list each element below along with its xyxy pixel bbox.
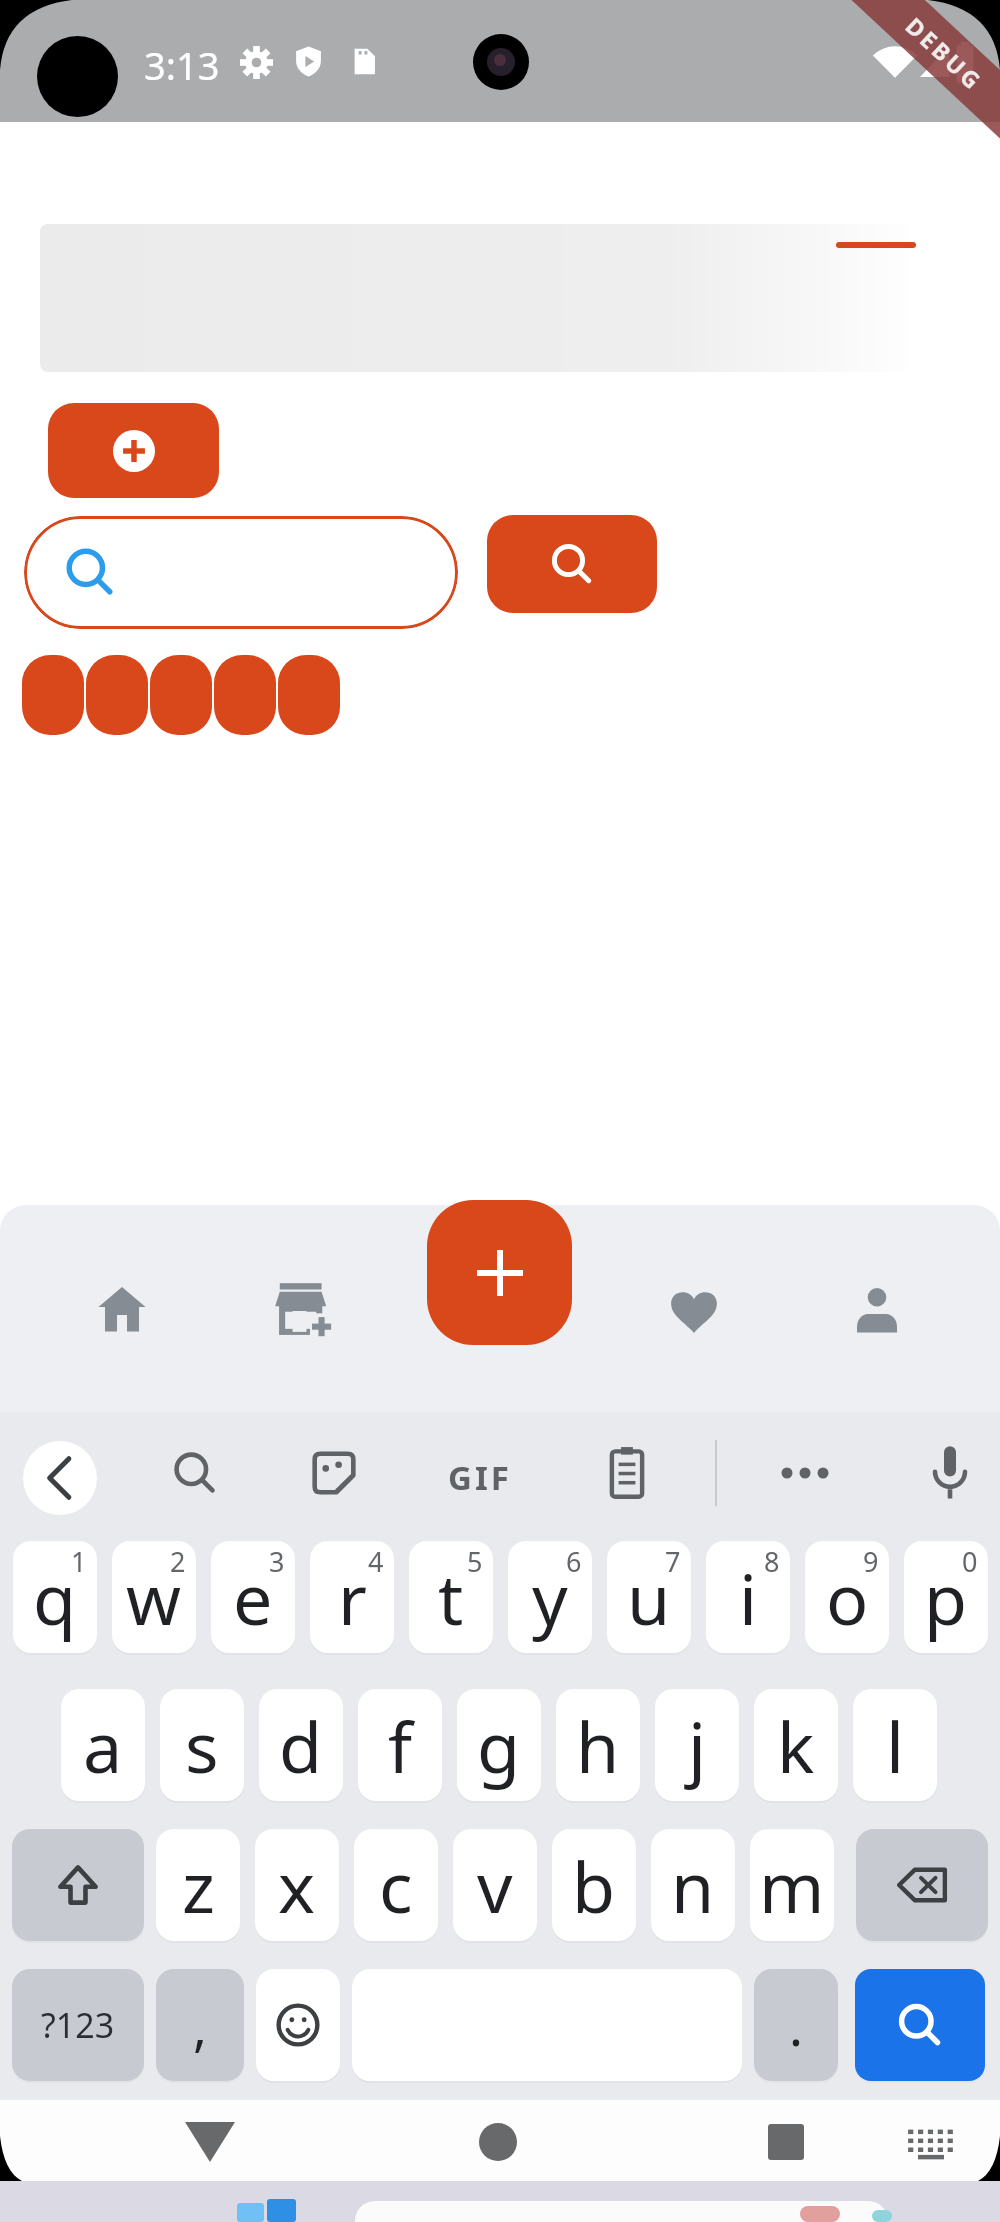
staticText: ?123 xyxy=(41,2002,115,2048)
staticText: e xyxy=(233,1550,273,1645)
button[interactable]: f xyxy=(358,1689,442,1801)
staticText: c xyxy=(379,1838,413,1933)
staticText: 6 xyxy=(566,1543,582,1580)
button[interactable]: c xyxy=(354,1829,438,1941)
staticText: x xyxy=(278,1838,316,1933)
staticText: q xyxy=(33,1550,77,1645)
button[interactable]: g xyxy=(457,1689,541,1801)
staticText: b xyxy=(572,1838,616,1933)
staticText: p xyxy=(924,1550,968,1645)
button[interactable] xyxy=(150,655,212,735)
button[interactable]: l xyxy=(853,1689,937,1801)
button[interactable] xyxy=(665,1281,723,1339)
staticText: 7 xyxy=(665,1543,681,1580)
staticText: a xyxy=(83,1698,123,1793)
staticText: 3:13 xyxy=(144,39,220,91)
button[interactable] xyxy=(905,2128,957,2160)
staticText: d xyxy=(279,1698,323,1793)
staticText: n xyxy=(671,1838,715,1933)
button[interactable] xyxy=(606,1446,648,1500)
staticText: y xyxy=(532,1550,568,1645)
button[interactable]: s xyxy=(160,1689,244,1801)
button[interactable] xyxy=(278,655,340,735)
button[interactable]: p xyxy=(904,1541,988,1653)
button[interactable]: o xyxy=(805,1541,889,1653)
button[interactable] xyxy=(855,1969,985,2081)
button[interactable] xyxy=(12,1829,144,1941)
staticText: k xyxy=(777,1698,815,1793)
staticText: 0 xyxy=(962,1543,978,1580)
staticText: w xyxy=(126,1550,182,1645)
button[interactable] xyxy=(768,2124,804,2160)
button[interactable]: y xyxy=(508,1541,592,1653)
button[interactable] xyxy=(856,1829,988,1941)
staticText: i xyxy=(739,1550,758,1645)
button[interactable] xyxy=(172,1450,218,1496)
staticText: v xyxy=(477,1838,513,1933)
button[interactable]: z xyxy=(156,1829,240,1941)
button[interactable] xyxy=(274,1282,332,1340)
button[interactable] xyxy=(86,655,148,735)
staticText: z xyxy=(182,1838,215,1933)
button[interactable]: t xyxy=(409,1541,493,1653)
staticText: 2 xyxy=(170,1543,186,1580)
staticText: l xyxy=(886,1698,905,1793)
button[interactable] xyxy=(487,515,657,613)
button[interactable]: w xyxy=(112,1541,196,1653)
button[interactable]: h xyxy=(556,1689,640,1801)
button[interactable] xyxy=(23,1441,97,1515)
button[interactable]: i xyxy=(706,1541,790,1653)
button[interactable]: r xyxy=(310,1541,394,1653)
button[interactable]: v xyxy=(453,1829,537,1941)
button[interactable] xyxy=(185,2122,235,2162)
button[interactable] xyxy=(93,1280,151,1338)
button[interactable]: m xyxy=(750,1829,834,1941)
button[interactable] xyxy=(311,1450,357,1496)
staticText: j xyxy=(688,1698,707,1793)
staticText: 9 xyxy=(863,1543,879,1580)
staticText: g xyxy=(477,1698,521,1793)
staticText: u xyxy=(627,1550,671,1645)
staticText: 3 xyxy=(269,1543,285,1580)
button[interactable]: GIF xyxy=(448,1455,512,1491)
button[interactable] xyxy=(48,403,219,498)
staticText: . xyxy=(789,1990,803,2061)
button[interactable] xyxy=(427,1200,572,1345)
button[interactable]: . xyxy=(754,1969,838,2081)
staticText: 1 xyxy=(71,1543,87,1580)
staticText: h xyxy=(576,1698,620,1793)
staticText: t xyxy=(438,1550,464,1645)
button[interactable] xyxy=(479,2123,517,2161)
staticText: m xyxy=(759,1838,825,1933)
staticText: , xyxy=(193,1990,207,2061)
staticText: o xyxy=(826,1550,869,1645)
staticText: DEBUG xyxy=(900,10,990,97)
button[interactable]: a xyxy=(61,1689,145,1801)
button[interactable] xyxy=(214,655,276,735)
button[interactable]: k xyxy=(754,1689,838,1801)
button[interactable]: n xyxy=(651,1829,735,1941)
staticText: 8 xyxy=(764,1543,780,1580)
button[interactable]: , xyxy=(156,1969,244,2081)
button[interactable] xyxy=(775,1466,835,1480)
button[interactable] xyxy=(24,516,458,629)
staticText: 5 xyxy=(467,1543,483,1580)
button[interactable] xyxy=(849,1281,905,1337)
button[interactable]: d xyxy=(259,1689,343,1801)
button[interactable] xyxy=(925,1444,975,1502)
button[interactable]: ?123 xyxy=(12,1969,144,2081)
staticText: f xyxy=(388,1698,413,1793)
staticText: 4 xyxy=(368,1543,384,1580)
button[interactable]: b xyxy=(552,1829,636,1941)
button[interactable]: j xyxy=(655,1689,739,1801)
button[interactable]: u xyxy=(607,1541,691,1653)
staticText: r xyxy=(338,1550,367,1645)
button[interactable] xyxy=(22,655,84,735)
staticText: GIF xyxy=(448,1455,512,1491)
button[interactable] xyxy=(256,1969,340,2081)
button[interactable]: e xyxy=(211,1541,295,1653)
staticText: s xyxy=(185,1698,219,1793)
button[interactable]: x xyxy=(255,1829,339,1941)
button[interactable]: q xyxy=(13,1541,97,1653)
